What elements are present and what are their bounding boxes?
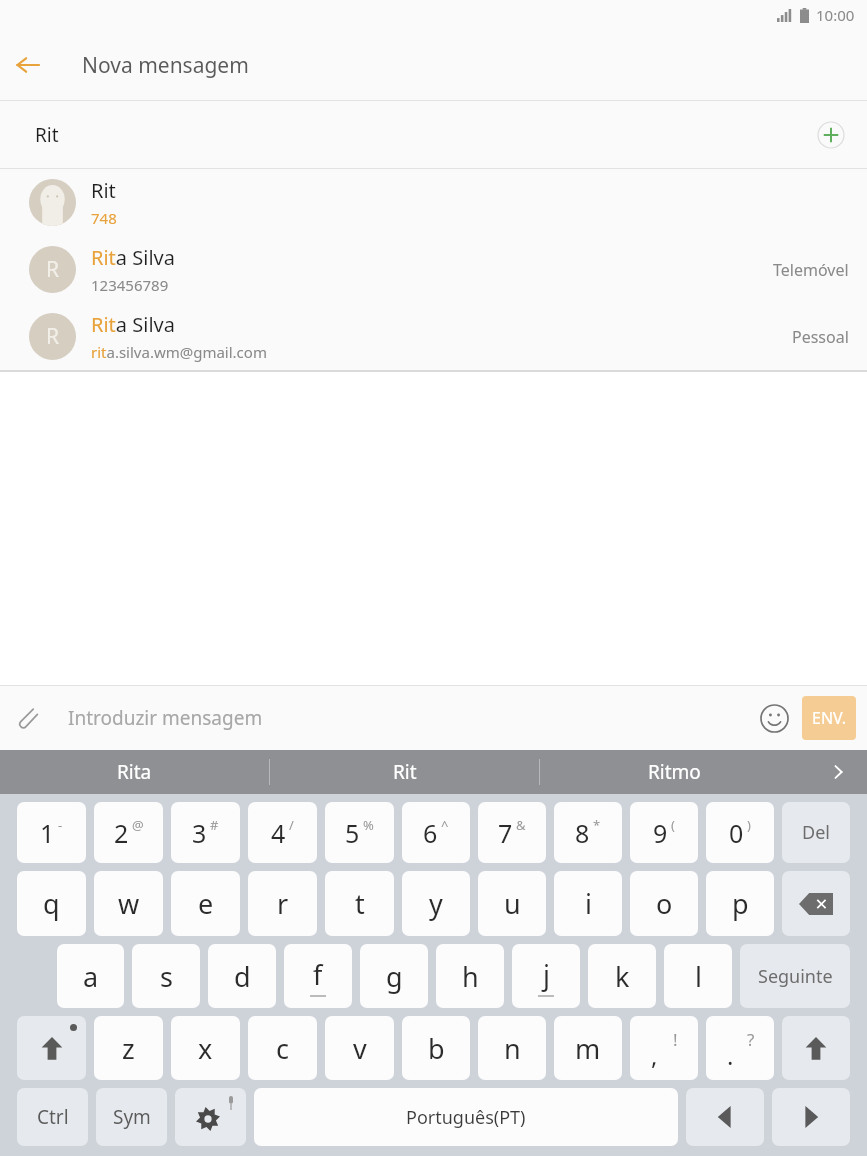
button[interactable]: h	[436, 944, 504, 1008]
staticText: y	[429, 885, 443, 922]
staticText: ENV.	[812, 707, 847, 729]
button[interactable]: b	[402, 1016, 470, 1080]
staticText: c	[276, 1030, 289, 1067]
button[interactable]: ENV.	[802, 696, 856, 740]
staticText: p	[732, 885, 749, 922]
button[interactable]: p	[706, 871, 774, 936]
button[interactable]: Delete	[782, 802, 850, 863]
button[interactable]: 5	[325, 802, 394, 863]
staticText: rita.silva.wm@gmail.com	[91, 342, 267, 362]
button[interactable]: d	[208, 944, 276, 1008]
staticText: Introduzir mensagem	[68, 705, 263, 731]
staticText: %	[363, 816, 374, 834]
staticText: 123456789	[91, 275, 169, 295]
staticText: f	[313, 956, 323, 993]
button[interactable]: r	[248, 871, 317, 936]
button[interactable]: Move cursor right	[772, 1088, 850, 1146]
button[interactable]: 0	[706, 802, 774, 863]
button[interactable]: Rit	[0, 169, 867, 236]
staticText: o	[656, 885, 673, 922]
staticText: ^	[441, 816, 449, 834]
staticText: l	[695, 958, 702, 995]
staticText: -	[58, 816, 63, 834]
button[interactable]: ,	[630, 1016, 698, 1080]
staticText: 0	[729, 816, 744, 850]
button[interactable]: l	[664, 944, 732, 1008]
button[interactable]: v	[325, 1016, 394, 1080]
button[interactable]: Seguinte	[740, 944, 850, 1008]
staticText: &	[516, 816, 526, 834]
button[interactable]: 8	[554, 802, 622, 863]
button[interactable]: j	[512, 944, 580, 1008]
button[interactable]: e	[171, 871, 240, 936]
button[interactable]: m	[554, 1016, 622, 1080]
staticText: ?	[747, 1028, 755, 1051]
staticText: 8	[575, 816, 590, 850]
button[interactable]: a	[57, 944, 124, 1008]
button[interactable]: Move cursor left	[686, 1088, 764, 1146]
staticText: a	[83, 958, 99, 995]
staticText: w	[118, 885, 140, 922]
staticText: u	[504, 885, 521, 922]
button[interactable]: Back	[0, 37, 56, 93]
button[interactable]: Shift	[17, 1016, 86, 1080]
staticText: ,	[651, 1039, 658, 1072]
staticText: 4	[271, 816, 286, 850]
staticText: Pessoal	[792, 326, 849, 348]
button[interactable]: 2	[94, 802, 163, 863]
staticText: n	[504, 1030, 521, 1067]
button[interactable]: R	[0, 303, 867, 370]
staticText: Seguinte	[758, 964, 833, 989]
button[interactable]: t	[325, 871, 394, 936]
staticText: g	[386, 958, 403, 995]
button[interactable]: Português(PT)	[254, 1088, 678, 1146]
button[interactable]: R	[0, 236, 867, 303]
button[interactable]: Ctrl	[17, 1088, 88, 1146]
button[interactable]: Sym	[96, 1088, 167, 1146]
staticText: /	[289, 816, 294, 834]
button[interactable]: Emoji	[750, 694, 798, 742]
staticText: j	[543, 956, 550, 993]
button[interactable]: 4	[248, 802, 317, 863]
button[interactable]: s	[132, 944, 200, 1008]
button[interactable]: o	[630, 871, 698, 936]
button[interactable]: 9	[630, 802, 698, 863]
button[interactable]: 6	[402, 802, 470, 863]
staticText: q	[43, 885, 60, 922]
staticText: Sym	[113, 1104, 151, 1130]
button[interactable]: Rita	[0, 750, 269, 794]
button[interactable]: .	[706, 1016, 774, 1080]
button[interactable]: x	[171, 1016, 240, 1080]
button[interactable]: k	[588, 944, 656, 1008]
button[interactable]: Add recipient	[807, 111, 855, 159]
staticText: Rita	[117, 759, 152, 785]
staticText: *	[593, 816, 601, 834]
button[interactable]: f	[284, 944, 352, 1008]
staticText: i	[585, 885, 592, 922]
staticText: Rita Silva	[91, 311, 175, 338]
staticText: e	[198, 885, 214, 922]
button[interactable]: 1	[17, 802, 86, 863]
button[interactable]: More suggestions	[809, 750, 867, 794]
button[interactable]: z	[94, 1016, 163, 1080]
button[interactable]: q	[17, 871, 86, 936]
button[interactable]: Ritmo	[540, 750, 809, 794]
button[interactable]: Shift	[782, 1016, 850, 1080]
button[interactable]: c	[248, 1016, 317, 1080]
button[interactable]: Keyboard settings	[175, 1088, 246, 1146]
staticText: 6	[423, 816, 438, 850]
button[interactable]: y	[402, 871, 470, 936]
button[interactable]: i	[554, 871, 622, 936]
button[interactable]: Backspace	[782, 871, 850, 936]
staticText: s	[160, 958, 173, 995]
button[interactable]: w	[94, 871, 163, 936]
button[interactable]: Rit	[270, 750, 539, 794]
button[interactable]: g	[360, 944, 428, 1008]
staticText: Rit	[35, 122, 59, 148]
button[interactable]: u	[478, 871, 546, 936]
button[interactable]: 7	[478, 802, 546, 863]
button[interactable]: n	[478, 1016, 546, 1080]
button[interactable]: Attach	[0, 691, 54, 745]
staticText: .	[727, 1039, 734, 1072]
button[interactable]: 3	[171, 802, 240, 863]
